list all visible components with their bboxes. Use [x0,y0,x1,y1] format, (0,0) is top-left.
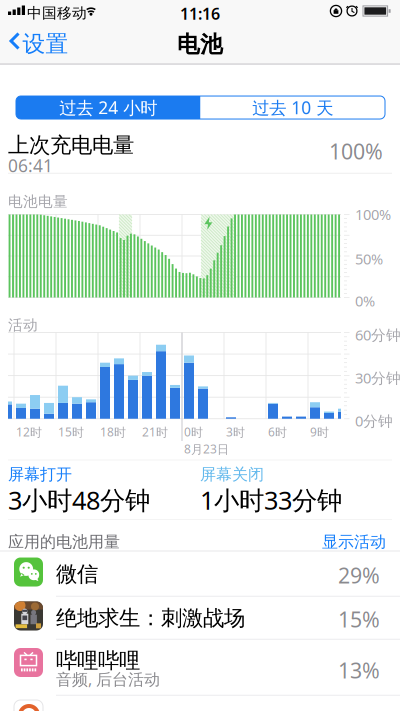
staticText: 绝地求生：刺激战场 [56,605,245,631]
staticText: 屏幕打开 [8,464,72,484]
staticText: 9时 [310,424,329,440]
staticText: 微信 [56,561,98,587]
staticText: 0分钟 [355,411,393,430]
staticText: 15% [338,605,380,633]
staticText: 0% [355,291,375,310]
staticText: 6时 [268,424,287,440]
staticText: 哔哩哔哩 [56,647,140,674]
staticText: 100% [355,204,391,224]
staticText: 21时 [142,424,168,440]
staticText: 15时 [58,424,84,440]
staticText: 18时 [100,424,126,440]
staticText: 上次充电电量 [8,132,134,158]
button[interactable]: 设置 [0,29,70,63]
staticText: 显示活动 [322,532,386,552]
staticText: 50% [355,249,383,268]
button[interactable]: 哔哩哔哩 [0,639,400,695]
staticText: 3小时48分钟 [8,483,150,517]
staticText: 应用的电池用量 [8,532,120,552]
staticText: 活动 [8,316,38,334]
staticText: 设置 [22,30,68,58]
staticText: 06:41 [8,154,53,177]
staticText: 60分钟 [355,325,400,344]
staticText: 1小时33分钟 [200,483,342,517]
staticText: 中国移动 [27,4,87,22]
staticText: 0时 [184,424,203,440]
button[interactable]: 过去 24 小时 [16,96,200,119]
staticText: 13% [338,656,380,684]
staticText: 30分钟 [355,368,400,387]
button[interactable]: 过去 10 天 [200,96,385,119]
staticText: 电池电量 [8,192,68,210]
staticText: 音频, 后台活动 [56,668,160,690]
button[interactable]: 绝地求生：刺激战场 [0,596,400,639]
staticText: 电池 [177,30,223,58]
staticText: 过去 24 小时 [59,96,157,119]
button[interactable]: 显示活动 [0,532,386,552]
staticText: 8月23日 [184,441,229,457]
staticText: 12时 [16,424,42,440]
staticText: 100% [329,137,383,165]
staticText: 3时 [226,424,245,440]
staticText: 屏幕关闭 [200,464,264,484]
staticText: 11:16 [180,3,220,24]
button[interactable]: 微信 [0,551,400,596]
staticText: 过去 10 天 [252,96,333,119]
staticText: 29% [338,561,380,589]
